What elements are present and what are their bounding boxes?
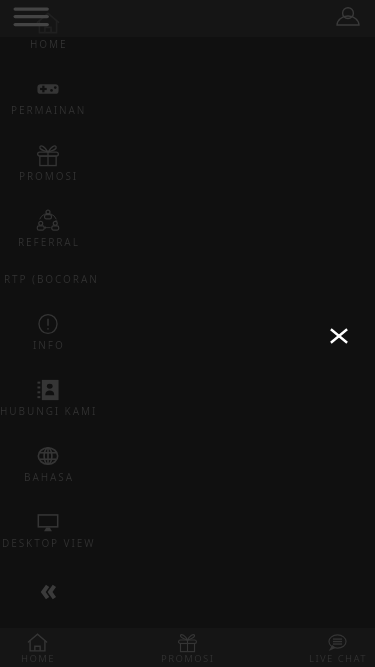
button[interactable] — [0, 66, 96, 132]
staticText: HOME — [21, 652, 55, 665]
staticText: PERMAINAN — [11, 104, 87, 116]
staticText: DESKTOP VIEW — [2, 537, 96, 549]
staticText: PROMOSI — [161, 652, 215, 665]
button[interactable] — [0, 0, 96, 66]
button[interactable]: Account — [337, 7, 359, 29]
staticText: HOME — [30, 38, 68, 50]
staticText: HUBUNGI KAMI — [0, 405, 98, 417]
button[interactable]: LIVE CHAT — [300, 628, 375, 667]
button[interactable] — [0, 433, 96, 499]
button[interactable]: HOME — [0, 628, 75, 667]
button[interactable]: Collapse menu — [38, 582, 58, 602]
staticText: PROMOSI — [19, 170, 79, 182]
staticText: RTP (BOCORAN INFO) — [4, 273, 98, 285]
staticText: BAHASA — [24, 471, 74, 483]
staticText: REFERRAL — [18, 236, 80, 248]
button[interactable]: Close — [327, 324, 351, 348]
button[interactable] — [0, 499, 96, 565]
button[interactable] — [0, 367, 96, 433]
button[interactable] — [0, 264, 96, 301]
button[interactable]: PROMOSI — [150, 628, 225, 667]
button[interactable] — [0, 198, 96, 264]
button[interactable] — [0, 132, 96, 198]
button[interactable]: Menu — [9, 0, 53, 34]
staticText: LIVE CHAT — [309, 652, 367, 665]
staticText: INFO — [33, 339, 65, 351]
button[interactable] — [0, 301, 96, 367]
